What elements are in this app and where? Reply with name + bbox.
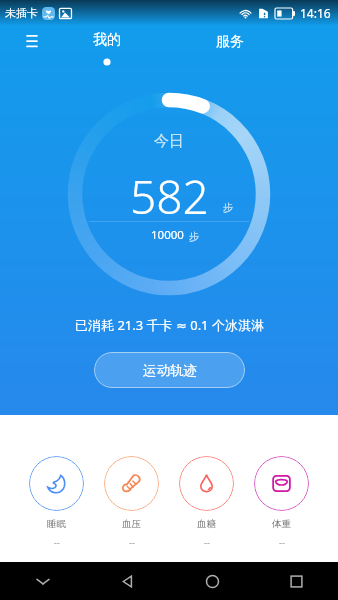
button[interactable]: 我的 [80, 26, 134, 71]
staticText: 血糖 [197, 518, 216, 530]
staticText: 今日 [154, 132, 184, 151]
button[interactable]: Home [170, 562, 255, 600]
staticText: 已消耗 21.3 千卡 ≈ 0.1 个冰淇淋 [75, 316, 264, 334]
staticText: -- [204, 536, 210, 548]
button[interactable]: 血压 [94, 456, 169, 548]
staticText: 体重 [272, 518, 291, 530]
staticText: 未插卡 [5, 6, 38, 20]
button[interactable]: Hide navigation [0, 562, 85, 600]
button[interactable]: Menu [13, 22, 51, 60]
staticText: 血压 [122, 518, 141, 530]
staticText: 10000 [151, 227, 184, 243]
button[interactable]: 运动轨迹 [94, 352, 245, 388]
button[interactable]: 血糖 [169, 456, 244, 548]
staticText: -- [54, 536, 60, 548]
staticText: 运动轨迹 [143, 362, 197, 379]
button[interactable]: Recents [255, 562, 338, 600]
staticText: 服务 [216, 33, 244, 51]
staticText: 582 [130, 165, 209, 228]
staticText: 睡眠 [47, 518, 66, 530]
button[interactable]: 睡眠 [19, 456, 94, 548]
button[interactable]: 服务 [203, 31, 257, 53]
staticText: 我的 [93, 31, 121, 49]
staticText: 步 [189, 230, 199, 243]
button[interactable]: 体重 [244, 456, 319, 548]
button[interactable]: Back [85, 562, 170, 600]
staticText: 14:16 [300, 5, 331, 21]
staticText: -- [279, 536, 285, 548]
staticText: 步 [223, 201, 233, 214]
staticText: -- [129, 536, 135, 548]
